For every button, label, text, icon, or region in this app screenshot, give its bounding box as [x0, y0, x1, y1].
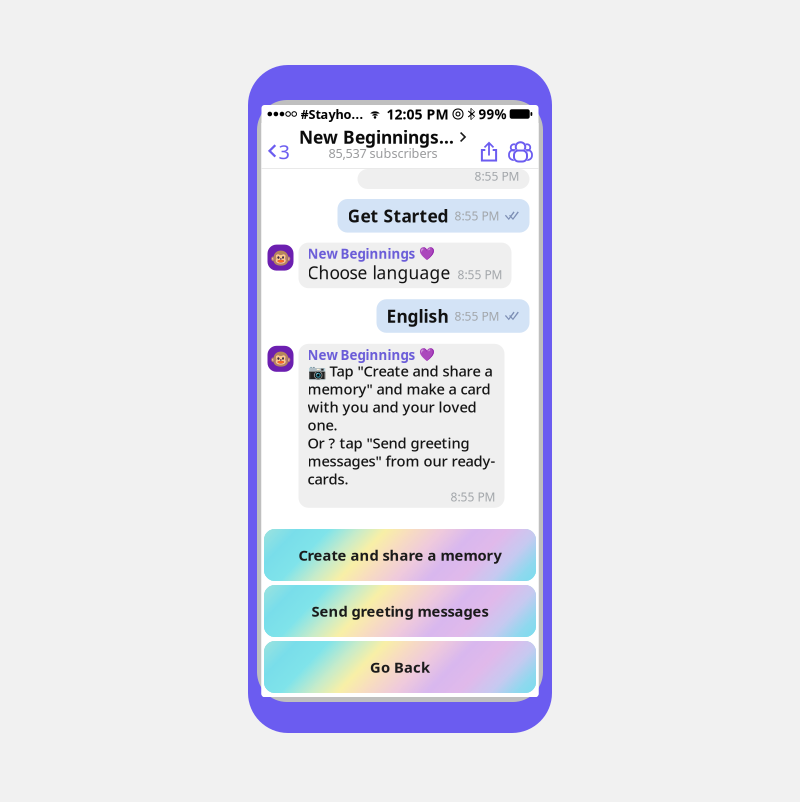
staticText: cards.: [307, 469, 348, 489]
staticText: memory" and make a card: [307, 379, 490, 399]
button[interactable]: Back: [261, 123, 291, 169]
staticText: New Beginnings...: [299, 125, 454, 149]
staticText: English: [386, 304, 448, 328]
staticText: messages" from our ready-: [307, 451, 495, 471]
button[interactable]: Members: [503, 123, 533, 169]
staticText: New Beginnings: [307, 244, 415, 263]
staticText: 85,537 subscribers: [328, 144, 437, 162]
staticText: Go Back: [370, 657, 430, 677]
staticText: 8:55 PM: [474, 168, 519, 184]
staticText: 99%: [478, 105, 506, 123]
staticText: 8:55 PM: [454, 208, 499, 224]
staticText: one.: [307, 415, 337, 435]
staticText: 🐵: [269, 349, 291, 369]
staticText: 3: [278, 138, 289, 165]
button[interactable]: Create and share a memory: [264, 529, 536, 581]
staticText: Get Started: [347, 204, 448, 228]
staticText: #Stayho...: [300, 105, 363, 123]
staticText: Choose language: [307, 261, 450, 284]
staticText: with you and your loved: [307, 397, 476, 417]
staticText: 8:55 PM: [454, 308, 499, 324]
staticText: Or ? tap "Send greeting: [307, 433, 469, 453]
button[interactable]: Send greeting messages: [264, 585, 536, 637]
staticText: 💜: [418, 246, 434, 261]
button[interactable]: New Beginnings channel info: [299, 123, 467, 169]
staticText: Send greeting messages: [311, 601, 488, 621]
staticText: Create and share a memory: [298, 545, 501, 565]
staticText: 💜: [418, 347, 434, 362]
staticText: 8:55 PM: [450, 489, 495, 505]
staticText: New Beginnings: [307, 346, 415, 364]
staticText: 📷 Tap "Create and share a: [307, 361, 492, 381]
button[interactable]: Go Back: [264, 641, 536, 693]
button[interactable]: Share: [474, 123, 503, 169]
staticText: 12:05 PM: [386, 104, 448, 124]
staticText: 8:55 PM: [457, 266, 502, 283]
staticText: 🐵: [269, 247, 291, 268]
